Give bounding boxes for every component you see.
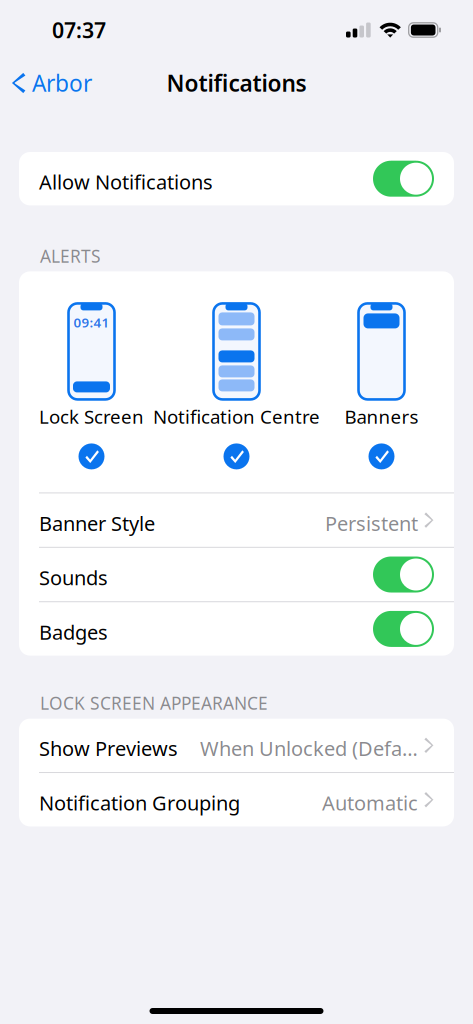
staticText: Show Previews xyxy=(39,735,178,762)
button[interactable]: Banner Style xyxy=(19,493,454,547)
staticText: Notification Grouping xyxy=(39,789,240,816)
staticText: Persistent xyxy=(325,510,418,536)
staticText: Banners xyxy=(344,404,418,429)
staticText: Automatic xyxy=(322,789,418,816)
staticText: Lock Screen xyxy=(39,404,144,429)
button[interactable]: Show Previews xyxy=(19,719,454,772)
staticText: Banner Style xyxy=(39,510,155,536)
staticText: 09:41 xyxy=(73,313,109,331)
staticText: Arbor xyxy=(32,68,92,98)
button[interactable]: Sounds xyxy=(19,548,454,601)
button[interactable]: Allow Notifications xyxy=(19,152,454,205)
staticText: ALERTS xyxy=(40,244,101,267)
staticText: When Unlocked (Defa… xyxy=(200,735,418,762)
button[interactable]: 09:41 xyxy=(68,271,114,492)
staticText: Badges xyxy=(39,619,108,645)
button[interactable]: Banners xyxy=(358,271,404,492)
button[interactable]: Notification Grouping xyxy=(19,773,454,826)
button[interactable]: Notification Centre xyxy=(213,271,259,492)
staticText: Notification Centre xyxy=(153,404,320,429)
staticText: LOCK SCREEN APPEARANCE xyxy=(40,692,268,715)
button[interactable]: Arbor xyxy=(0,62,92,104)
button[interactable]: Badges xyxy=(19,602,454,656)
staticText: 07:37 xyxy=(52,16,106,44)
staticText: Notifications xyxy=(166,68,306,98)
staticText: Allow Notifications xyxy=(39,168,213,195)
staticText: Sounds xyxy=(39,564,108,591)
